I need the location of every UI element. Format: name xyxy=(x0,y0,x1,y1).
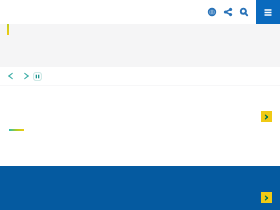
button[interactable]: Pause xyxy=(33,72,42,81)
button[interactable]: Next article xyxy=(261,111,272,122)
button[interactable]: Search xyxy=(236,0,252,24)
button[interactable]: Menu xyxy=(256,0,280,24)
button[interactable]: Previous xyxy=(4,70,16,82)
button[interactable]: Share xyxy=(220,0,236,24)
button[interactable]: Language xyxy=(204,0,220,24)
button[interactable]: Next xyxy=(261,192,272,203)
button[interactable]: Next xyxy=(20,70,32,82)
